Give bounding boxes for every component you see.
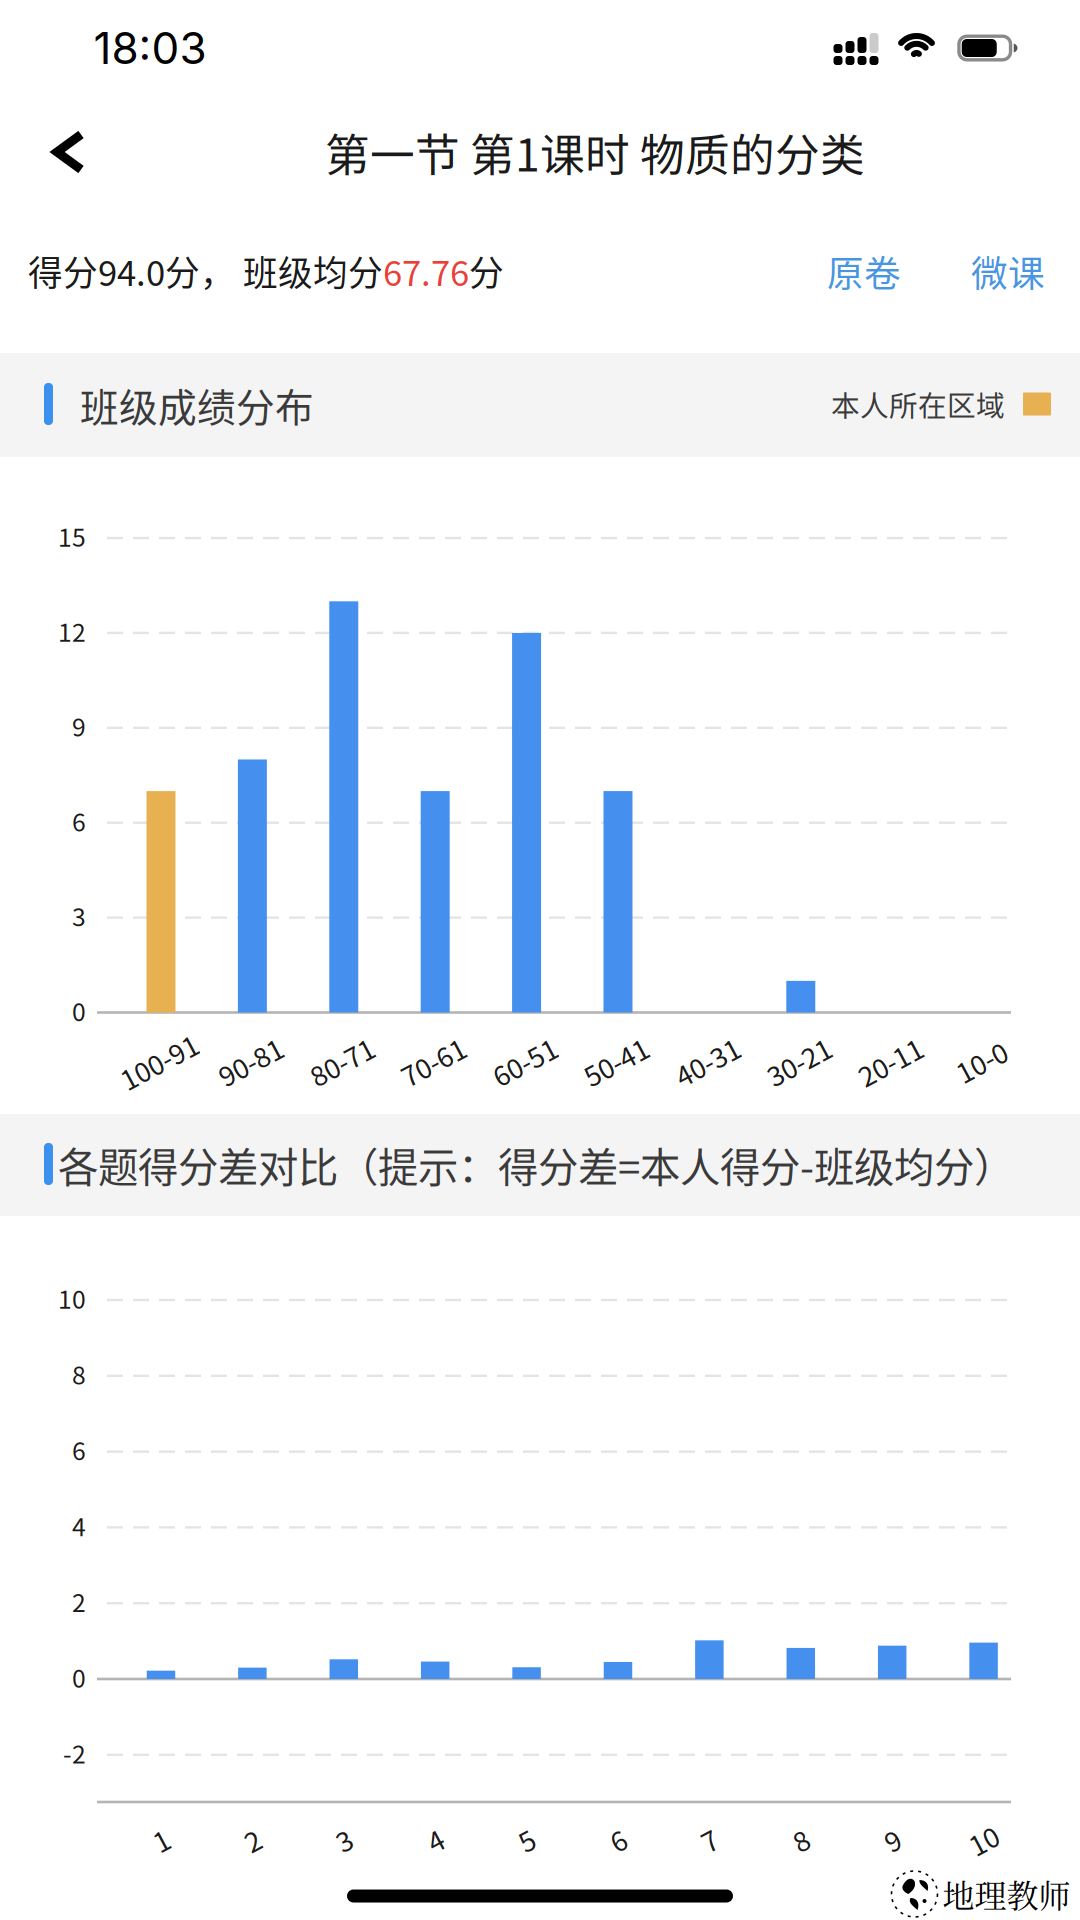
button[interactable]: 原卷 <box>792 220 936 322</box>
staticText: 9 <box>72 708 86 744</box>
staticText: 9 <box>885 1820 900 1860</box>
staticText: 分 <box>469 246 504 296</box>
staticText: 4 <box>428 1820 443 1860</box>
staticText: 第一节 第1课时 物质的分类 <box>325 120 865 184</box>
staticText: 10 <box>969 1820 999 1860</box>
staticText: 微课 <box>971 244 1045 298</box>
staticText: 20-11 <box>856 1042 925 1081</box>
staticText: 7 <box>702 1820 717 1860</box>
staticText: 班级成绩分布 <box>80 377 314 433</box>
staticText: 1 <box>153 1820 168 1860</box>
staticText: 70-61 <box>399 1042 468 1081</box>
staticText: 2 <box>245 1820 260 1860</box>
staticText: 本人所在区域 <box>831 383 1005 425</box>
staticText: 100-91 <box>117 1042 201 1081</box>
staticText: 得分94.0分， 班级均分 <box>28 246 383 296</box>
staticText: 0 <box>72 1659 86 1695</box>
staticText: 90-81 <box>216 1042 285 1081</box>
staticText: 2 <box>72 1583 86 1619</box>
staticText: 12 <box>58 613 86 649</box>
staticText: 40-31 <box>673 1042 742 1081</box>
staticText: 15 <box>58 518 86 554</box>
staticText: 3 <box>336 1820 351 1860</box>
staticText: 10-0 <box>955 1042 1009 1081</box>
staticText: 4 <box>72 1507 86 1543</box>
staticText: 6 <box>610 1820 625 1860</box>
staticText: 8 <box>793 1820 808 1860</box>
staticText: 50-41 <box>581 1042 650 1081</box>
staticText: 67.76 <box>383 246 469 296</box>
staticText: 6 <box>72 803 86 839</box>
staticText: 18:03 <box>93 21 206 75</box>
staticText: 60-51 <box>490 1042 559 1081</box>
staticText: 原卷 <box>827 244 901 298</box>
staticText: 各题得分差对比（提示：得分差=本人得分-班级均分） <box>58 1136 1014 1194</box>
button[interactable]: Back <box>4 97 134 207</box>
staticText: 5 <box>519 1820 534 1860</box>
staticText: 30-21 <box>764 1042 833 1081</box>
staticText: 3 <box>72 898 86 933</box>
staticText: 8 <box>72 1356 86 1392</box>
button[interactable]: 微课 <box>936 220 1080 322</box>
staticText: 地理教师 <box>942 1871 1070 1917</box>
staticText: 6 <box>72 1432 86 1467</box>
staticText: 80-71 <box>307 1042 376 1081</box>
staticText: 0 <box>72 993 86 1028</box>
staticText: 10 <box>58 1280 86 1316</box>
staticText: -2 <box>63 1735 86 1771</box>
